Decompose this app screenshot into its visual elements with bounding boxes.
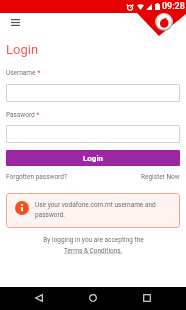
staticText: Terms & Conditions. bbox=[64, 247, 123, 255]
button[interactable]: Login bbox=[6, 150, 180, 166]
button[interactable]: Open navigation menu bbox=[6, 13, 24, 31]
button[interactable]: Recent apps bbox=[137, 288, 157, 308]
button[interactable] bbox=[6, 84, 180, 102]
staticText: Use your vodafone.com.mt username and pa… bbox=[35, 201, 173, 219]
staticText: Login bbox=[83, 154, 104, 163]
button[interactable]: Back bbox=[29, 288, 49, 308]
button[interactable]: Home bbox=[83, 288, 103, 308]
staticText: Register Now bbox=[141, 173, 180, 181]
button[interactable]: Forgotten password? bbox=[6, 173, 68, 181]
staticText: Login bbox=[6, 42, 39, 57]
staticText: Forgotten password? bbox=[6, 173, 68, 181]
staticText: Username bbox=[6, 69, 36, 77]
button[interactable]: Register Now bbox=[141, 173, 180, 181]
staticText: Password bbox=[6, 111, 35, 119]
staticText: By logging in you are accepting the bbox=[43, 236, 144, 244]
staticText: 09:28 bbox=[162, 1, 185, 12]
staticText: * bbox=[36, 69, 41, 77]
staticText: * bbox=[35, 111, 40, 119]
button[interactable]: Terms & Conditions. bbox=[64, 247, 123, 255]
button[interactable] bbox=[6, 125, 180, 143]
